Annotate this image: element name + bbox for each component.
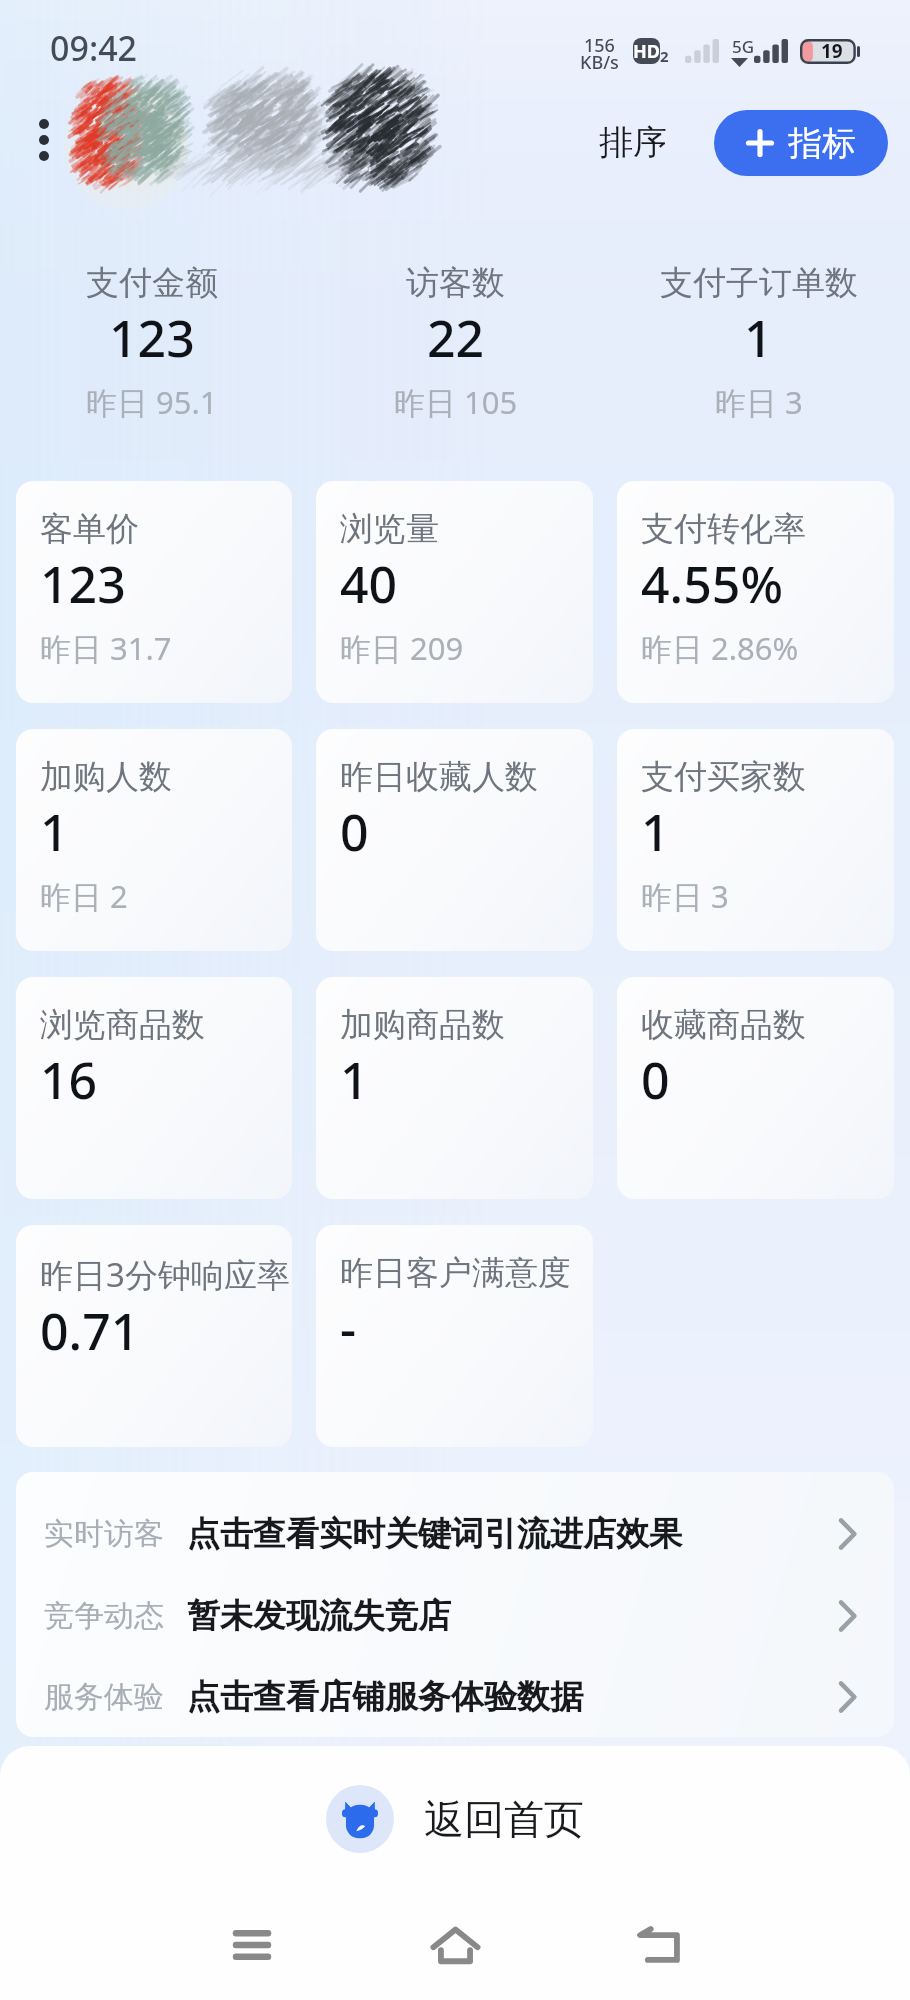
staticText: 浏览量 [340, 508, 439, 550]
staticText: 指标 [788, 122, 856, 165]
staticText: 22 [427, 304, 485, 372]
button[interactable]: 返回首页 [316, 1783, 594, 1855]
staticText: 昨日 2.86% [641, 627, 799, 669]
staticText: 09:42 [50, 25, 138, 71]
staticText: 浏览商品数 [40, 1004, 205, 1046]
staticText: 昨日收藏人数 [340, 756, 538, 798]
button[interactable]: 浏览商品数 [16, 977, 292, 1199]
button[interactable]: 加购商品数 [316, 977, 593, 1199]
staticText: 昨日 95.1 [86, 381, 218, 423]
button[interactable]: 竞争动态 [16, 1575, 894, 1657]
staticText: 昨日 3 [715, 381, 803, 423]
staticText: 支付金额 [86, 262, 218, 304]
staticText: 0 [641, 1046, 670, 1114]
staticText: 支付子订单数 [660, 262, 858, 304]
staticText: 0.71 [40, 1297, 140, 1365]
staticText: 加购商品数 [340, 1004, 505, 1046]
staticText: 1 [744, 304, 773, 372]
button[interactable]: 指标 [714, 110, 888, 176]
staticText: 竞争动态 [44, 1597, 164, 1635]
staticText: 点击查看实时关键词引流进店效果 [187, 1513, 682, 1555]
button[interactable] [60, 72, 440, 192]
staticText: 昨日客户满意度 [340, 1252, 571, 1294]
staticText: 昨日 3 [641, 875, 729, 917]
button[interactable]: 收藏商品数 [617, 977, 894, 1199]
staticText: 1 [641, 798, 670, 866]
staticText: 昨日 2 [40, 875, 128, 917]
staticText: - [340, 1294, 357, 1362]
staticText: 2 [660, 46, 669, 66]
button[interactable]: 排序 [583, 109, 683, 176]
button[interactable]: 加购人数 [16, 729, 292, 951]
staticText: 点击查看店铺服务体验数据 [187, 1676, 583, 1718]
staticText: 1 [340, 1046, 369, 1114]
button[interactable]: 访客数 [304, 262, 607, 423]
staticText: 156 [584, 33, 615, 58]
staticText: KB/s [580, 50, 619, 75]
button[interactable]: 实时访客 [16, 1493, 894, 1575]
button[interactable]: More options [24, 104, 64, 176]
staticText: 支付买家数 [641, 756, 806, 798]
button[interactable]: Recent apps [202, 1900, 302, 1990]
staticText: 40 [340, 550, 398, 618]
staticText: 实时访客 [44, 1515, 164, 1553]
staticText: 16 [40, 1046, 98, 1114]
staticText: 收藏商品数 [641, 1004, 806, 1046]
staticText: 昨日 31.7 [40, 627, 172, 669]
staticText: 服务体验 [44, 1678, 164, 1716]
staticText: 19 [821, 38, 843, 64]
staticText: 4.55% [641, 550, 783, 618]
staticText: 支付转化率 [641, 508, 806, 550]
staticText: 5G [732, 35, 755, 58]
staticText: 123 [109, 304, 195, 372]
button[interactable]: 服务体验 [16, 1657, 894, 1737]
button[interactable]: Home [405, 1900, 505, 1990]
staticText: 123 [40, 550, 126, 618]
button[interactable]: 昨日客户满意度 [316, 1225, 593, 1447]
staticText: 1 [40, 798, 69, 866]
staticText: 加购人数 [40, 756, 172, 798]
button[interactable]: 支付金额 [0, 262, 304, 423]
staticText: 0 [340, 798, 369, 866]
button[interactable]: Back [608, 1900, 708, 1990]
button[interactable]: 浏览量 [316, 481, 593, 703]
button[interactable]: 支付子订单数 [607, 262, 910, 423]
staticText: 昨日 105 [394, 381, 518, 423]
button[interactable]: 支付转化率 [617, 481, 894, 703]
button[interactable]: 客单价 [16, 481, 292, 703]
staticText: 排序 [599, 121, 667, 164]
staticText: 昨日3分钟响应率 [40, 1252, 290, 1297]
staticText: 返回首页 [424, 1794, 584, 1844]
staticText: 暂未发现流失竞店 [187, 1595, 451, 1637]
button[interactable]: 昨日收藏人数 [316, 729, 593, 951]
staticText: HD [633, 39, 660, 64]
button[interactable]: 昨日3分钟响应率 [16, 1225, 292, 1447]
staticText: 昨日 209 [340, 627, 464, 669]
staticText: 访客数 [406, 262, 505, 304]
staticText: 客单价 [40, 508, 139, 550]
button[interactable]: 支付买家数 [617, 729, 894, 951]
